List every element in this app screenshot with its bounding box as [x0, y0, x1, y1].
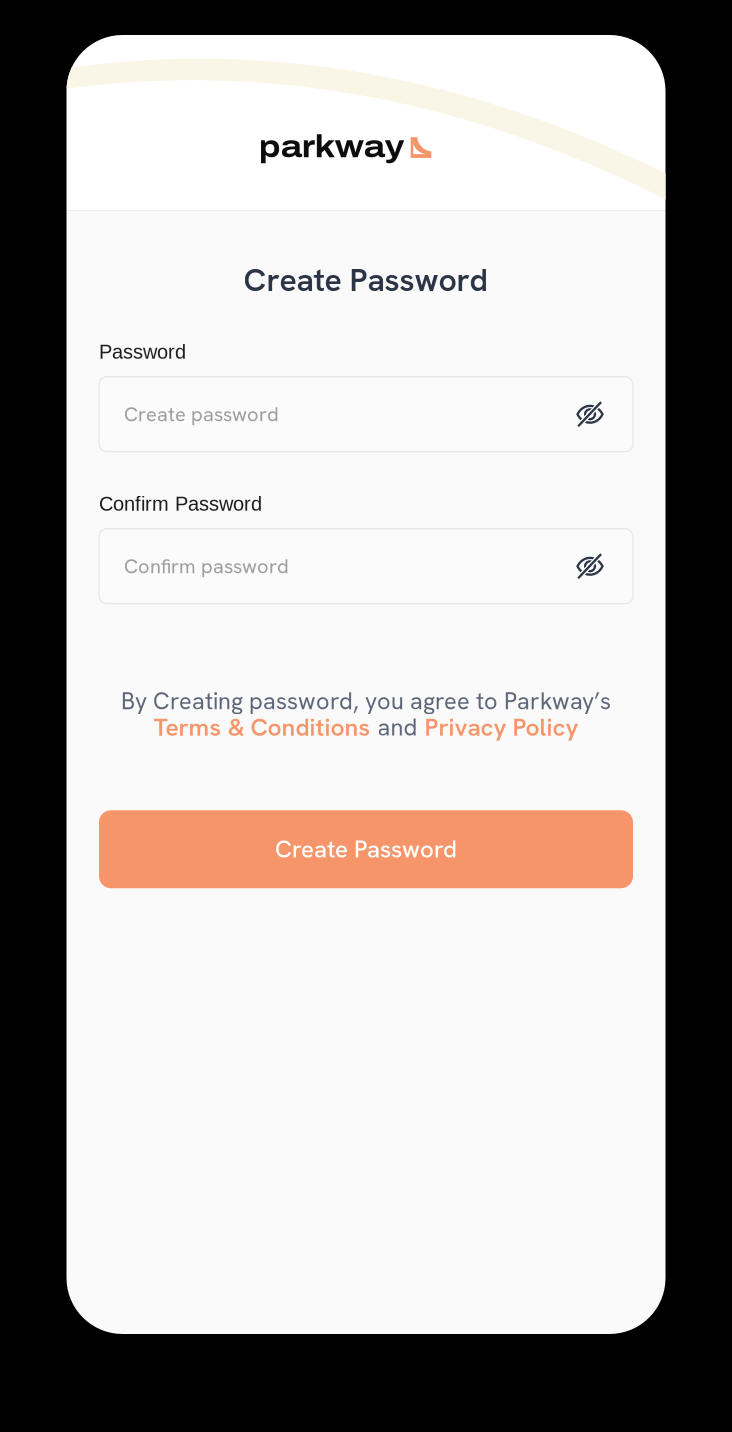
button[interactable]: Create password: [99, 377, 633, 452]
staticText: Terms & Conditions: [153, 711, 370, 743]
staticText: Create password: [124, 401, 279, 427]
staticText: Privacy Policy: [424, 711, 578, 743]
button[interactable]: Create Password: [99, 810, 633, 888]
staticText: parkway: [259, 129, 405, 164]
button[interactable]: Confirm password: [99, 529, 633, 604]
staticText: Confirm Password: [99, 492, 262, 515]
staticText: By Creating password, you agree to Parkw…: [121, 686, 611, 716]
button[interactable]: Privacy Policy: [424, 711, 578, 743]
button[interactable]: Terms & Conditions: [153, 711, 370, 743]
staticText: Create Password: [243, 259, 488, 301]
staticText: Password: [99, 340, 186, 363]
staticText: Create Password: [275, 834, 457, 865]
staticText: and: [377, 712, 417, 743]
staticText: Confirm password: [124, 553, 289, 579]
